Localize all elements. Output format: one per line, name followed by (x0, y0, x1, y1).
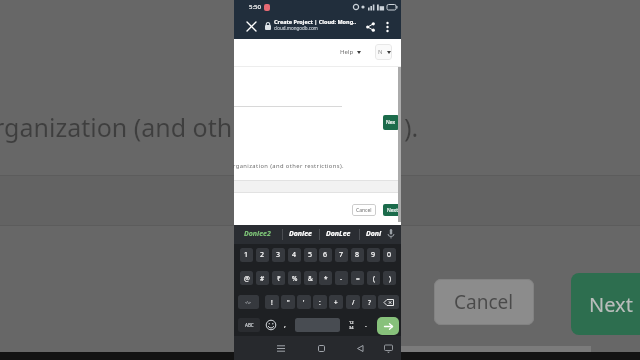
button[interactable]: 2 (256, 248, 269, 262)
staticText: / (352, 298, 355, 307)
staticText: 5 (308, 250, 313, 260)
button[interactable]: * (319, 271, 332, 285)
button[interactable]: 3 (272, 248, 285, 262)
staticText: & (308, 274, 313, 283)
staticText: 12 (349, 320, 354, 325)
button[interactable]: ₹ (272, 271, 285, 285)
button[interactable]: " (281, 295, 295, 309)
button[interactable]: ! (265, 295, 279, 309)
staticText: Cancel (454, 289, 514, 315)
staticText: 1 (244, 250, 249, 260)
button[interactable]: Next (383, 204, 401, 216)
button[interactable]: / (346, 295, 360, 309)
button[interactable]: 7 (335, 248, 348, 262)
button[interactable]: Help (340, 48, 354, 56)
button[interactable] (277, 345, 285, 352)
button[interactable]: Donl (366, 229, 382, 239)
staticText: ' (303, 298, 305, 307)
button[interactable]: Cancel (434, 279, 534, 325)
staticText: ABC (245, 322, 254, 328)
button[interactable]: ) (383, 271, 396, 285)
button[interactable]: Nex (383, 115, 399, 130)
button[interactable] (357, 345, 363, 352)
button[interactable]: , (284, 320, 286, 330)
button[interactable]: 4 (288, 248, 301, 262)
staticText: + (334, 298, 338, 307)
staticText: rganization (and other restrictions). (233, 162, 345, 170)
staticText: Create Project | Cloud: Mong.. (274, 18, 357, 25)
button[interactable]: ? (362, 295, 376, 309)
button[interactable] (266, 320, 276, 330)
button[interactable]: Cancel (352, 204, 376, 216)
button[interactable]: = (351, 271, 364, 285)
staticText: : (319, 298, 321, 307)
staticText: # (260, 274, 265, 283)
staticText: Next (589, 291, 633, 318)
staticText: 0 (387, 250, 392, 260)
button[interactable] (295, 318, 340, 332)
button[interactable] (366, 22, 375, 32)
staticText: ) (389, 274, 391, 283)
staticText: 34 (349, 325, 354, 330)
staticText: 4 (292, 250, 297, 260)
button[interactable]: 12 (344, 318, 358, 332)
button[interactable]: ( (367, 271, 380, 285)
staticText: 8 (355, 250, 360, 260)
staticText: rganization (and oth (0, 110, 233, 144)
staticText: cloud.mongodb.com (274, 25, 318, 31)
staticText: ₹ (277, 274, 281, 283)
button[interactable]: + (329, 295, 343, 309)
button[interactable] (377, 317, 399, 335)
button[interactable]: 9 (367, 248, 380, 262)
button[interactable] (318, 345, 325, 352)
staticText: 5:50 (249, 3, 261, 11)
staticText: <\> (245, 300, 252, 305)
staticText: Nex (386, 119, 396, 126)
button[interactable]: Donlee2 (244, 229, 271, 239)
staticText: - (340, 274, 343, 283)
button[interactable]: 8 (351, 248, 364, 262)
button[interactable]: % (288, 271, 301, 285)
button[interactable]: DonLee (326, 229, 351, 239)
staticText: = (356, 274, 360, 283)
staticText: % (292, 274, 298, 283)
button[interactable]: 6 (319, 248, 332, 262)
button[interactable]: . (365, 320, 367, 330)
button[interactable]: Donlee (289, 229, 312, 239)
staticText: 6 (323, 250, 328, 260)
button[interactable]: - (335, 271, 348, 285)
button[interactable]: @ (240, 271, 253, 285)
staticText: 3 (276, 250, 281, 260)
button[interactable]: 0 (383, 248, 396, 262)
button[interactable]: : (313, 295, 327, 309)
button[interactable]: <\> (238, 295, 259, 309)
button[interactable]: ' (297, 295, 311, 309)
staticText: ( (373, 274, 375, 283)
button[interactable]: ABC (238, 318, 260, 332)
staticText: Cancel (356, 207, 372, 214)
button[interactable] (375, 44, 392, 60)
staticText: " (287, 298, 290, 307)
staticText: 2 (260, 250, 265, 260)
button[interactable] (384, 345, 393, 353)
staticText: @ (244, 274, 250, 283)
button[interactable] (378, 295, 399, 309)
staticText: ! (271, 298, 273, 307)
staticText: ? (368, 298, 371, 307)
button[interactable] (386, 21, 389, 33)
button[interactable]: 1 (240, 248, 253, 262)
staticText: N (378, 48, 383, 56)
staticText: * (324, 274, 328, 283)
button[interactable]: 5 (304, 248, 317, 262)
staticText: Next (387, 207, 398, 214)
button[interactable]: & (304, 271, 317, 285)
button[interactable]: Next (571, 273, 640, 335)
staticText: ). (404, 110, 419, 144)
staticText: 7 (339, 250, 344, 260)
button[interactable]: # (256, 271, 269, 285)
staticText: 9 (371, 250, 376, 260)
button[interactable] (246, 21, 257, 32)
